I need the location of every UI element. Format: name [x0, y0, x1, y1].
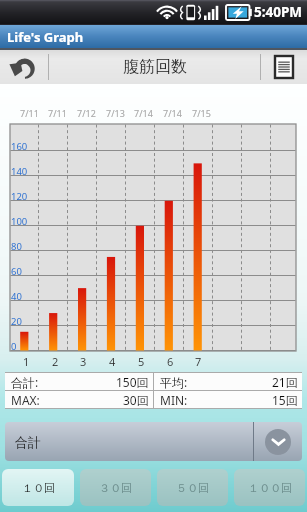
staticText: 7/15 [192, 107, 211, 119]
staticText: 20 [11, 315, 22, 328]
staticText: 7/14 [134, 107, 153, 119]
staticText: 合計: [11, 374, 39, 390]
staticText: 6 [167, 354, 174, 369]
staticText: 80 [11, 240, 22, 253]
staticText: 7/12 [77, 107, 96, 119]
staticText: １００回 [248, 481, 292, 495]
staticText: 7/14 [163, 107, 182, 119]
staticText: 腹筋回数 [123, 57, 187, 77]
staticText: 15回 [272, 392, 298, 408]
staticText: 1 [23, 354, 30, 369]
staticText: 0 [11, 340, 17, 353]
staticText: 120 [11, 190, 28, 203]
staticText: 5:40PM [254, 3, 303, 21]
staticText: 160 [11, 140, 28, 153]
staticText: ３０回 [99, 481, 132, 495]
staticText: 7/11 [20, 107, 39, 119]
staticText: 平均: [160, 374, 188, 390]
staticText: 21回 [272, 374, 298, 390]
staticText: MIN: [160, 392, 188, 408]
staticText: 7/13 [106, 107, 125, 119]
staticText: 150回 [116, 374, 149, 390]
button[interactable]: １００回 [234, 469, 305, 506]
staticText: Life's Graph [7, 28, 84, 46]
button[interactable]: List [261, 50, 307, 84]
button[interactable]: ３０回 [80, 469, 151, 506]
staticText: 5 [138, 354, 145, 369]
staticText: １０回 [22, 481, 55, 495]
button[interactable]: １０回 [2, 469, 74, 506]
staticText: 60 [11, 265, 22, 278]
staticText: 3 [80, 354, 87, 369]
staticText: 合計 [15, 434, 41, 450]
staticText: 7 [195, 354, 202, 369]
button[interactable]: Undo [0, 50, 48, 84]
staticText: 7/11 [48, 107, 67, 119]
staticText: 30回 [123, 392, 149, 408]
staticText: 40 [11, 290, 22, 303]
staticText: MAX: [11, 392, 40, 408]
staticText: 2 [52, 354, 59, 369]
button[interactable]: 合計 [5, 422, 302, 461]
staticText: 100 [11, 215, 28, 228]
staticText: 140 [11, 165, 28, 178]
button[interactable]: ５０回 [157, 469, 228, 506]
staticText: 4 [109, 354, 116, 369]
staticText: ５０回 [176, 481, 209, 495]
